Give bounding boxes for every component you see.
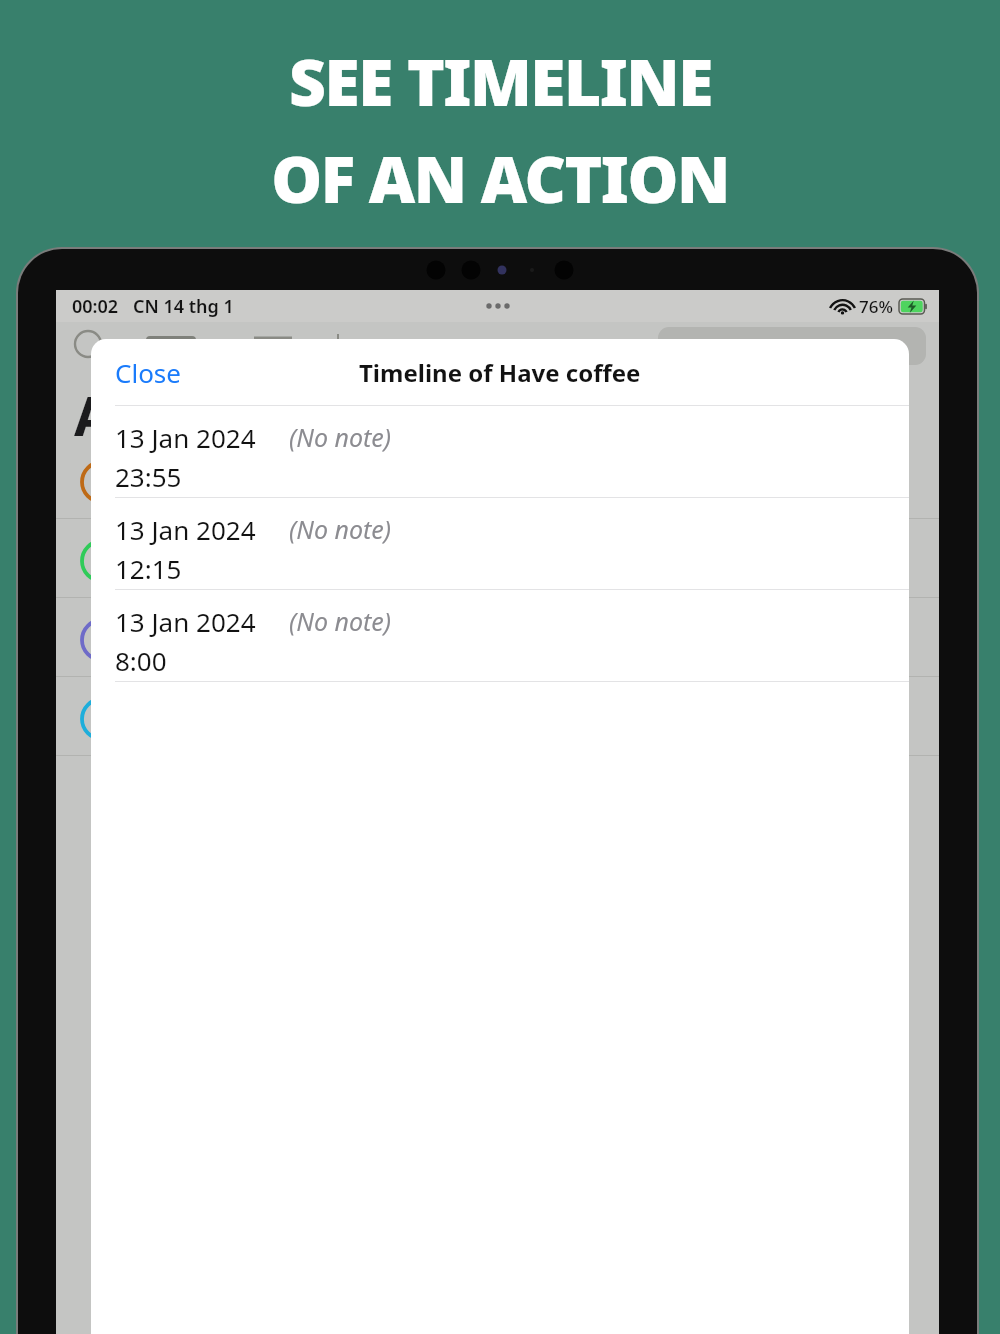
button[interactable]: 13 Jan 2024: [91, 498, 909, 589]
staticText: 23:55: [115, 459, 182, 494]
staticText: 13 Jan 2024: [115, 420, 256, 455]
other: Wi-Fi: [832, 299, 853, 315]
button[interactable]: 13 Jan 2024: [91, 406, 909, 497]
staticText: 76%: [859, 295, 893, 318]
staticText: A: [74, 378, 112, 452]
staticText: CN 14 thg 1: [133, 294, 234, 319]
staticText: 13 Jan 2024: [115, 512, 256, 547]
staticText: 00:02: [72, 294, 119, 319]
staticText: Close: [115, 355, 181, 390]
button[interactable]: Close: [91, 343, 205, 402]
staticText: 12:15: [115, 551, 182, 586]
staticText: (No note): [289, 512, 392, 546]
staticText: Timeline of Have coffee: [359, 356, 641, 389]
button[interactable]: 13 Jan 2024: [91, 590, 909, 681]
staticText: SEE TIMELINE: [289, 38, 712, 125]
staticText: (No note): [289, 420, 392, 454]
other: Battery charging: [899, 299, 927, 314]
staticText: (No note): [289, 604, 392, 638]
staticText: 8:00: [115, 643, 167, 678]
staticText: OF AN ACTION: [271, 135, 729, 222]
staticText: 13 Jan 2024: [115, 604, 256, 639]
